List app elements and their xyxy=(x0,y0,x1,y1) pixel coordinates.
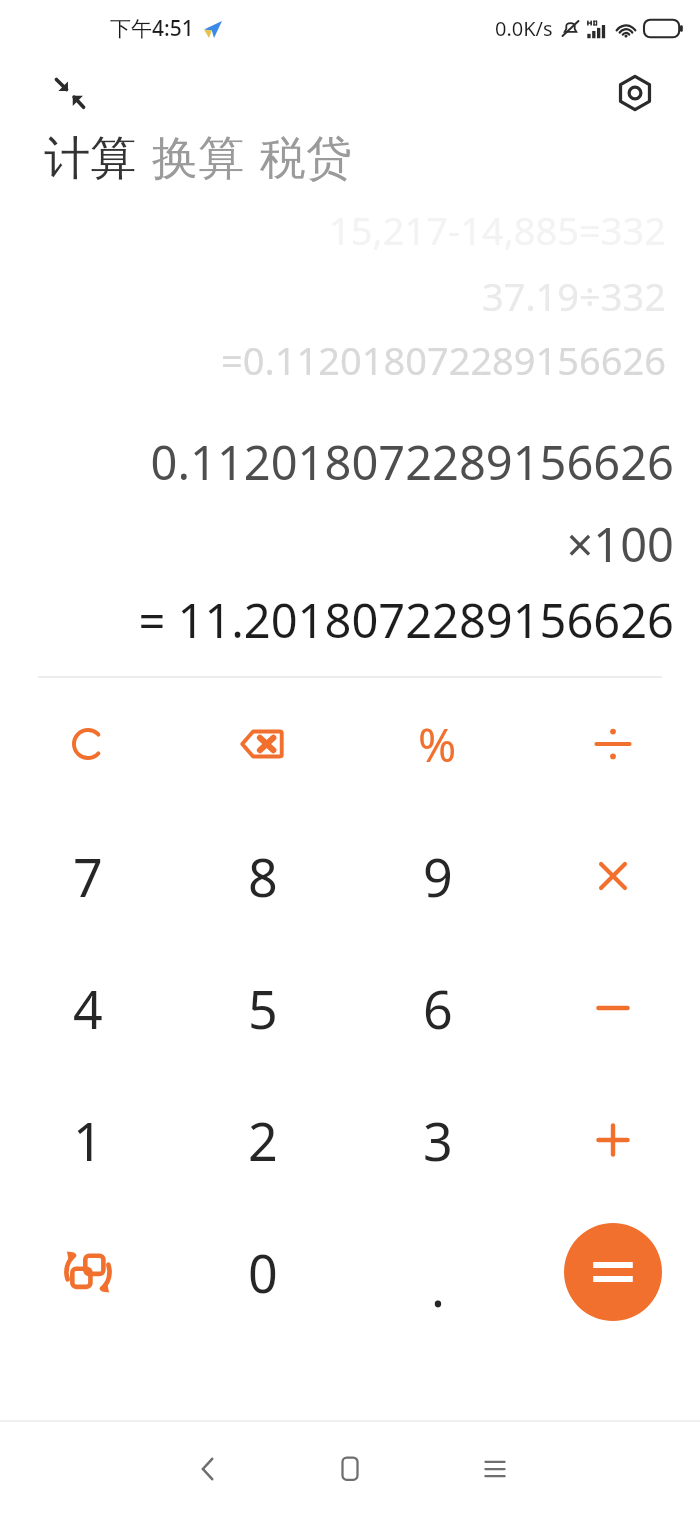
button[interactable]: 1 xyxy=(0,1074,175,1206)
staticText: 0 xyxy=(248,1237,278,1308)
staticText: 4 xyxy=(73,973,103,1044)
staticText: 15,217-14,885=332 xyxy=(329,204,666,256)
staticText: 计算 xyxy=(44,130,136,188)
button[interactable]: . xyxy=(350,1206,525,1338)
staticText: 0.0K/s xyxy=(495,15,553,42)
button[interactable]: 7 xyxy=(0,810,175,942)
staticText: =0.112018072289156626 xyxy=(221,334,666,386)
staticText: 2 xyxy=(248,1105,278,1176)
button[interactable]: Plus xyxy=(525,1074,700,1206)
staticText: 37.19÷332 xyxy=(481,270,666,322)
button[interactable]: Back xyxy=(178,1439,238,1499)
button[interactable]: Settings xyxy=(606,64,664,122)
staticText: 3 xyxy=(423,1105,453,1176)
staticText: 换算 xyxy=(152,130,244,188)
button[interactable]: 5 xyxy=(175,942,350,1074)
button[interactable]: 3 xyxy=(350,1074,525,1206)
staticText: = 11.2018072289156626 xyxy=(138,588,674,652)
button[interactable]: Menu xyxy=(465,1439,525,1499)
button[interactable]: Equals xyxy=(525,1206,700,1338)
button[interactable]: 0 xyxy=(175,1206,350,1338)
button[interactable]: 4 xyxy=(0,942,175,1074)
button[interactable]: 2 xyxy=(175,1074,350,1206)
staticText: 7 xyxy=(73,841,103,912)
staticText: 1 xyxy=(73,1105,103,1176)
staticText: % xyxy=(418,713,457,776)
staticText: ×100 xyxy=(566,512,674,576)
button[interactable]: Minus xyxy=(525,942,700,1074)
staticText: 9 xyxy=(423,841,453,912)
button[interactable]: Home xyxy=(320,1439,380,1499)
button[interactable]: 税贷 xyxy=(252,130,360,188)
staticText: 0.112018072289156626 xyxy=(150,430,674,494)
button[interactable]: 8 xyxy=(175,810,350,942)
button[interactable]: 9 xyxy=(350,810,525,942)
staticText: 下午4:51 xyxy=(110,14,194,43)
button[interactable]: 计算 xyxy=(44,130,144,188)
button[interactable]: Multiply xyxy=(525,810,700,942)
staticText: 税贷 xyxy=(260,130,352,188)
button[interactable]: % xyxy=(350,678,525,810)
button[interactable]: 换算 xyxy=(144,130,252,188)
staticText: 5 xyxy=(248,973,278,1044)
button[interactable]: 6 xyxy=(350,942,525,1074)
staticText: 8 xyxy=(248,841,278,912)
button[interactable]: Unit conversion xyxy=(0,1206,175,1338)
button[interactable]: Collapse xyxy=(42,65,98,121)
button[interactable]: Clear xyxy=(0,678,175,810)
staticText: . xyxy=(431,1251,445,1322)
staticText: 6 xyxy=(423,973,453,1044)
button[interactable]: Divide xyxy=(525,678,700,810)
button[interactable]: Backspace xyxy=(175,678,350,810)
